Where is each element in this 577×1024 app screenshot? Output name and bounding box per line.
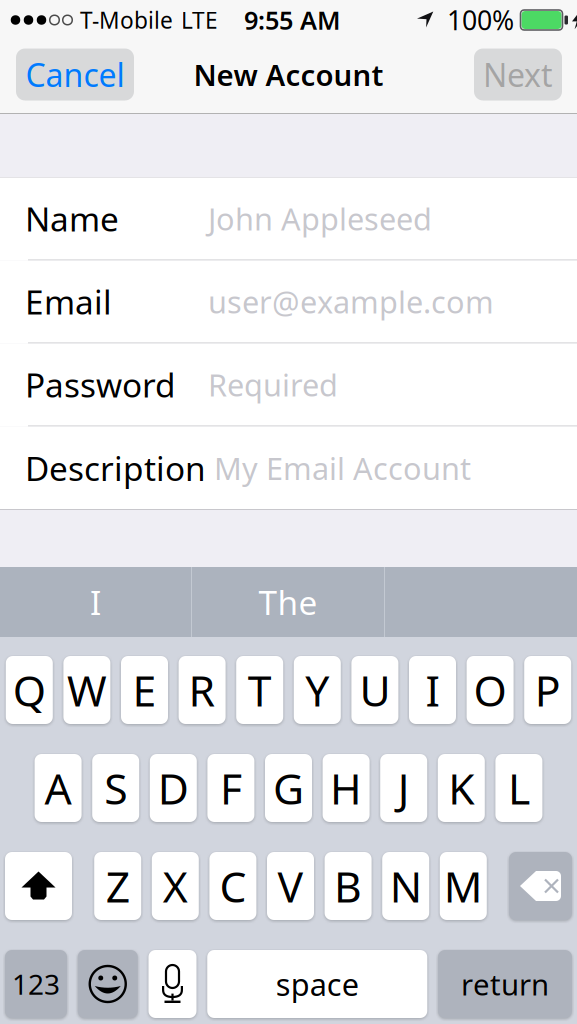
staticText: T-Mobile xyxy=(80,5,173,35)
button[interactable]: F xyxy=(207,754,254,822)
staticText: F xyxy=(220,760,242,816)
button[interactable]: E xyxy=(121,656,168,724)
staticText: A xyxy=(45,760,72,816)
button[interactable]: K xyxy=(438,754,485,822)
staticText: John Appleseed xyxy=(208,198,432,239)
staticText: R xyxy=(189,662,216,718)
staticText: space xyxy=(276,964,359,1004)
button[interactable]: Q xyxy=(6,656,53,724)
staticText: 100% xyxy=(447,2,514,38)
staticText: H xyxy=(330,760,362,816)
button[interactable]: H xyxy=(323,754,370,822)
staticText: N xyxy=(390,858,422,914)
button[interactable]: T xyxy=(236,656,283,724)
staticText: Email xyxy=(25,279,112,324)
button[interactable]: Next xyxy=(474,48,562,100)
staticText: K xyxy=(448,760,474,816)
button[interactable]: D xyxy=(150,754,197,822)
button[interactable]: J xyxy=(380,754,427,822)
staticText: G xyxy=(273,760,304,816)
button[interactable]: W xyxy=(63,656,110,724)
staticText: Name xyxy=(25,196,119,241)
button[interactable]: S xyxy=(92,754,139,822)
staticText: I xyxy=(425,662,439,718)
button[interactable]: Emoji xyxy=(78,950,138,1018)
staticText: Z xyxy=(106,858,130,914)
button[interactable]: Delete xyxy=(509,852,572,920)
staticText: Q xyxy=(13,662,46,718)
staticText: Next xyxy=(483,53,553,96)
staticText: Description xyxy=(25,446,206,490)
button[interactable]: I xyxy=(409,656,456,724)
staticText: E xyxy=(132,662,156,718)
staticText: O xyxy=(474,662,507,718)
button[interactable]: Y xyxy=(294,656,341,724)
button[interactable]: P xyxy=(524,656,571,724)
staticText: B xyxy=(334,858,362,914)
button[interactable]: A xyxy=(35,754,82,822)
staticText: I xyxy=(90,580,101,624)
staticText: M xyxy=(444,858,483,914)
button[interactable]: N xyxy=(382,852,429,920)
staticText: J xyxy=(398,760,410,816)
button[interactable]: I xyxy=(0,567,191,637)
button[interactable]: R xyxy=(179,656,226,724)
staticText: P xyxy=(535,662,561,718)
button[interactable]: L xyxy=(495,754,542,822)
staticText: Password xyxy=(25,362,176,407)
button[interactable]: Cancel xyxy=(16,48,134,100)
staticText: user@example.com xyxy=(208,281,494,322)
button[interactable]: return xyxy=(438,950,572,1018)
staticText: Required xyxy=(208,364,338,405)
staticText: Cancel xyxy=(25,53,124,96)
staticText: D xyxy=(158,760,189,816)
button[interactable]: O xyxy=(467,656,514,724)
staticText: The xyxy=(258,580,317,624)
staticText: T xyxy=(248,662,272,718)
staticText: L xyxy=(508,760,530,816)
button[interactable]: The xyxy=(192,567,384,637)
button[interactable]: Shift xyxy=(5,852,72,920)
button[interactable]: Dictation xyxy=(148,950,196,1018)
button[interactable]: V xyxy=(267,852,314,920)
button[interactable]: U xyxy=(351,656,398,724)
staticText: W xyxy=(67,662,107,718)
staticText: C xyxy=(219,858,246,914)
button[interactable]: 123 xyxy=(5,950,67,1018)
button[interactable]: B xyxy=(325,852,372,920)
staticText: My Email Account xyxy=(214,448,471,488)
staticText: V xyxy=(277,858,303,914)
button[interactable]: X xyxy=(152,852,199,920)
staticText: X xyxy=(163,858,188,914)
staticText: New Account xyxy=(193,55,383,94)
staticText: U xyxy=(359,662,390,718)
button[interactable]: G xyxy=(265,754,312,822)
button[interactable]: space xyxy=(207,950,427,1018)
staticText: Y xyxy=(305,662,329,718)
staticText: LTE xyxy=(181,5,218,35)
button[interactable]: M xyxy=(440,852,487,920)
button[interactable]: C xyxy=(209,852,256,920)
button[interactable]: Z xyxy=(94,852,141,920)
staticText: S xyxy=(104,760,127,816)
staticText: return xyxy=(461,964,549,1003)
staticText: 9:55 AM xyxy=(244,3,341,37)
staticText: 123 xyxy=(12,965,60,1003)
